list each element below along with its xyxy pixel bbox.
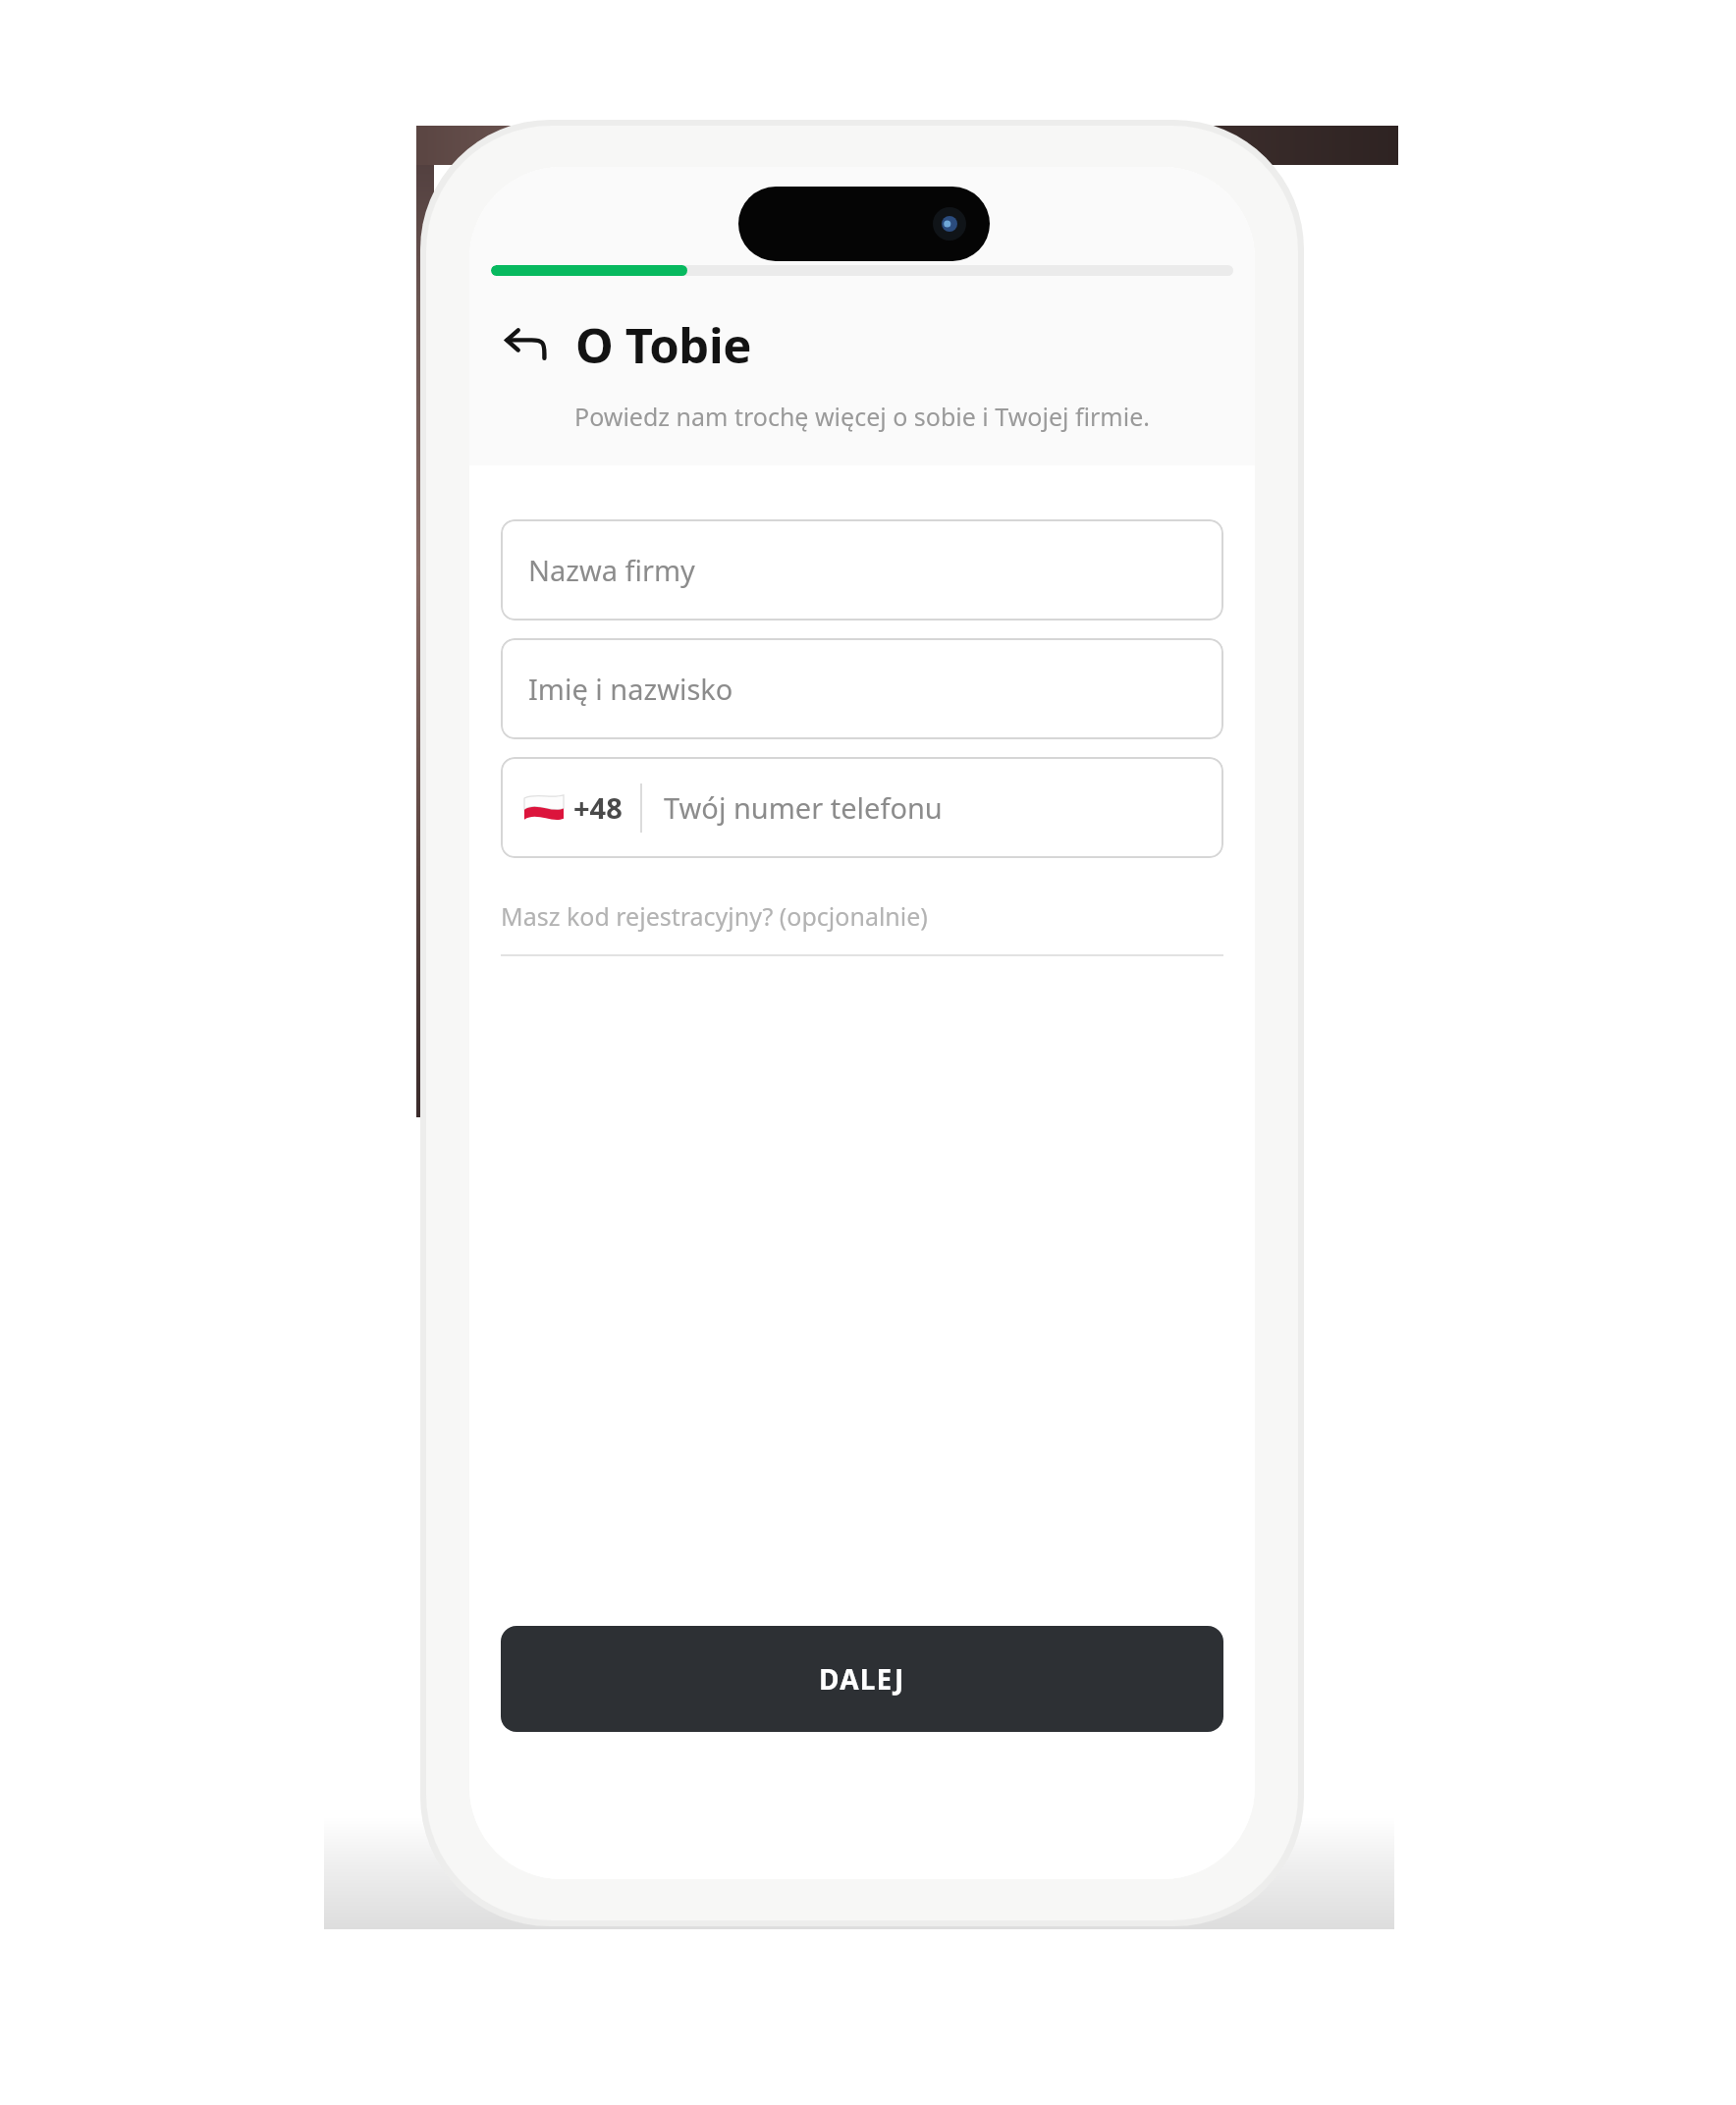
staticText: O Tobie xyxy=(575,312,752,378)
button[interactable]: Imię i nazwisko xyxy=(501,638,1223,739)
staticText: Nazwa firmy xyxy=(528,551,695,589)
staticText: DALEJ xyxy=(819,1660,905,1698)
button[interactable]: Wstecz xyxy=(491,309,562,380)
button[interactable]: Nazwa firmy xyxy=(501,519,1223,621)
button[interactable]: DALEJ xyxy=(501,1626,1223,1732)
staticText: Powiedz nam trochę więcej o sobie i Twoj… xyxy=(495,400,1229,433)
staticText: Masz kod rejestracyjny? (opcjonalnie) xyxy=(501,899,928,933)
staticText: Twój numer telefonu xyxy=(664,788,943,827)
button[interactable]: +48 xyxy=(501,757,1223,858)
staticText: +48 xyxy=(573,788,623,827)
staticText: Imię i nazwisko xyxy=(528,670,733,708)
button[interactable]: Masz kod rejestracyjny? (opcjonalnie) xyxy=(501,899,1223,956)
